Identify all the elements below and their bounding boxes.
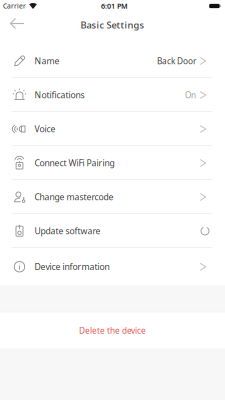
staticText: Change mastercode: [34, 191, 113, 203]
button[interactable]: Voice: [0, 112, 225, 146]
staticText: Connect WiFi Pairing: [34, 157, 114, 169]
staticText: Update software: [34, 225, 100, 237]
button[interactable]: Delete the device: [0, 311, 225, 349]
button[interactable]: Change mastercode: [0, 180, 225, 214]
staticText: Device information: [34, 261, 109, 273]
staticText: Back Door: [157, 55, 196, 67]
staticText: Basic Settings: [80, 19, 144, 31]
staticText: Name: [34, 55, 59, 67]
button[interactable]: Name: [0, 44, 225, 78]
staticText: Notifications: [34, 89, 84, 101]
staticText: Voice: [34, 123, 55, 135]
staticText: Carrier: [3, 1, 26, 11]
button[interactable]: Back: [0, 18, 24, 38]
staticText: Delete the device: [79, 325, 146, 336]
button[interactable]: Device information: [0, 248, 225, 285]
button[interactable]: Update software: [0, 214, 225, 248]
button[interactable]: Connect WiFi Pairing: [0, 146, 225, 180]
staticText: On: [185, 89, 196, 101]
button[interactable]: Notifications: [0, 78, 225, 112]
staticText: 6:01 PM: [101, 1, 128, 11]
